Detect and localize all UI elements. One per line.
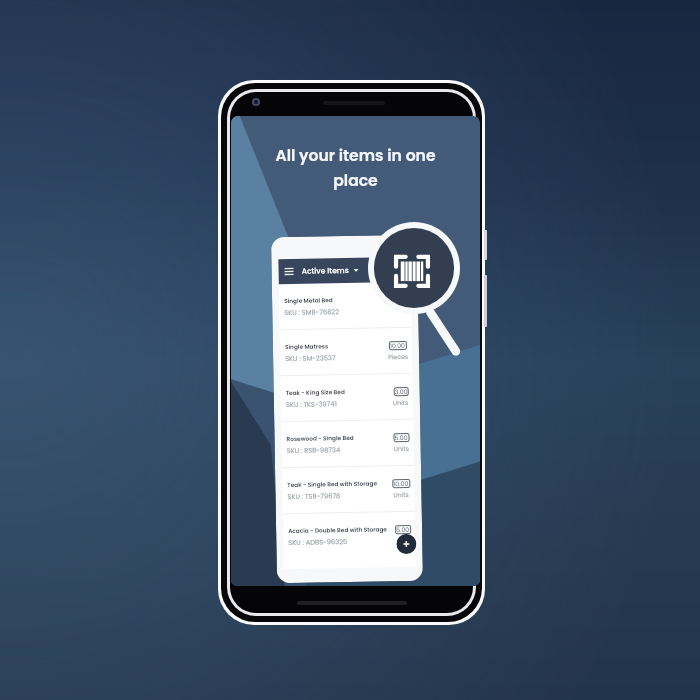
staticText: 3.00 [395, 387, 408, 396]
button[interactable]: Teak - Single Bed with Storage [282, 466, 415, 513]
staticText: SKU : SMB-76822 [284, 307, 339, 317]
staticText: Units [393, 490, 410, 499]
staticText: SKU : TKS-39741 [286, 399, 337, 409]
staticText: All your items in one place [253, 145, 458, 191]
button[interactable]: Rosewood - Single Bed [281, 420, 414, 467]
staticText: Active Items [301, 265, 350, 277]
staticText: SKU : ADBS-96325 [288, 537, 347, 547]
button[interactable]: Add item [396, 534, 416, 554]
staticText: Units [393, 398, 409, 407]
staticText: SKU : RSB-98734 [287, 445, 341, 455]
staticText: SKU : SM-23537 [285, 353, 336, 363]
button[interactable]: Single Metal Bed [279, 282, 412, 329]
staticText: Pcs [398, 536, 409, 545]
staticText: 5.00 [396, 525, 410, 534]
staticText: Rosewood - Single Bed [286, 434, 354, 443]
staticText: Pieces [388, 352, 408, 361]
staticText: 10.00 [393, 479, 409, 488]
button[interactable]: Scan barcode [339, 193, 480, 343]
staticText: SKU : TSB-79678 [287, 491, 340, 501]
button[interactable]: Teak - King Size Bed [280, 374, 413, 421]
staticText: Teak - Single Bed with Storage [287, 479, 377, 489]
button[interactable]: Active Items [278, 257, 411, 284]
button[interactable]: Acacia - Double Bed with Storage [283, 512, 416, 559]
staticText: Single Matress [285, 342, 329, 351]
staticText: Acacia - Double Bed with Storage [288, 525, 387, 535]
staticText: Single Metal Bed [284, 296, 333, 305]
staticText: 5.00 [394, 433, 409, 442]
button[interactable]: Single Matress [280, 328, 412, 375]
staticText: 10.00 [390, 341, 406, 350]
staticText: Teak - King Size Bed [286, 388, 346, 397]
staticText: Units [394, 444, 410, 453]
